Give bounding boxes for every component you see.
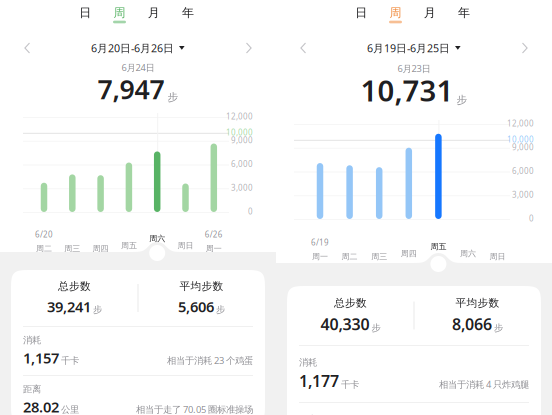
staticText: 0 [248, 206, 253, 217]
staticText: 6,000 [231, 159, 253, 169]
staticText: 总步数 [334, 296, 367, 309]
button[interactable]: 日 [344, 4, 378, 26]
button[interactable]: 月 [137, 4, 171, 26]
staticText: 6/26 [205, 229, 223, 240]
staticText: 6/19 [311, 237, 329, 248]
staticText: 5,606 [178, 297, 214, 316]
staticText: 日 [79, 5, 91, 20]
staticText: 公里 [61, 404, 79, 415]
staticText: 10,000 [226, 127, 253, 138]
staticText: 12,000 [507, 118, 534, 129]
staticText: 步 [93, 304, 102, 315]
staticText: 周日 [490, 252, 506, 261]
staticText: 周二 [36, 244, 52, 253]
button[interactable]: Previous period [14, 37, 40, 59]
button[interactable]: 6月20日-6月26日 [78, 37, 198, 59]
staticText: 周四 [401, 249, 417, 258]
staticText: 6月24日 [121, 61, 154, 74]
staticText: 距离 [23, 383, 41, 395]
staticText: 39,241 [47, 297, 91, 316]
staticText: 6,000 [512, 166, 534, 176]
staticText: 7,947 [97, 71, 164, 107]
button[interactable]: 6月19日-6月25日 [354, 37, 474, 59]
staticText: 28.02 [23, 397, 59, 415]
staticText: 0 [529, 213, 534, 224]
staticText: 6/20 [35, 229, 53, 240]
staticText: 周日 [177, 241, 193, 250]
staticText: 相当于走了 70.05 圈标准操场 [136, 403, 253, 415]
staticText: 周 [113, 5, 125, 20]
staticText: 平均步数 [179, 280, 223, 293]
staticText: 9,000 [512, 142, 534, 152]
staticText: 月 [148, 5, 160, 20]
staticText: 年 [458, 5, 470, 20]
staticText: 3,000 [231, 182, 253, 193]
button[interactable]: 月 [413, 4, 447, 26]
button[interactable]: 周 [378, 4, 412, 26]
staticText: 9,000 [231, 135, 253, 145]
staticText: 相当于消耗 4 只炸鸡腿 [439, 378, 529, 390]
staticText: 周二 [342, 252, 358, 261]
staticText: 步 [494, 322, 503, 334]
button[interactable]: 周 [102, 4, 136, 26]
staticText: 10,731 [360, 70, 453, 109]
staticText: 日 [355, 5, 367, 20]
staticText: 步 [371, 322, 380, 334]
staticText: 消耗 [299, 357, 317, 368]
staticText: 10,000 [507, 134, 534, 145]
staticText: 千卡 [341, 379, 359, 390]
staticText: 1,177 [299, 370, 339, 391]
button[interactable]: Previous period [290, 37, 316, 59]
staticText: 消耗 [23, 334, 41, 346]
staticText: 周六 [460, 249, 476, 258]
staticText: 12,000 [226, 111, 253, 122]
button[interactable]: 日 [68, 4, 102, 26]
staticText: 1,157 [23, 348, 59, 367]
staticText: 6月20日-6月26日 [91, 41, 174, 55]
staticText: 周一 [312, 252, 328, 261]
staticText: 6月23日 [397, 62, 430, 75]
staticText: 周六 [149, 234, 165, 243]
staticText: 周 [389, 5, 401, 20]
staticText: 周三 [64, 244, 80, 253]
staticText: 月 [424, 5, 436, 20]
staticText: 千卡 [61, 355, 79, 366]
staticText: 6月19日-6月25日 [367, 41, 450, 55]
staticText: 周四 [93, 244, 109, 253]
button[interactable]: Next period [236, 37, 262, 59]
staticText: 总步数 [58, 280, 91, 293]
staticText: 周五 [121, 241, 137, 250]
staticText: 周一 [206, 244, 222, 253]
button[interactable]: 年 [171, 4, 205, 26]
staticText: 3,000 [512, 189, 534, 200]
staticText: 8,066 [452, 313, 492, 335]
staticText: 平均步数 [455, 296, 499, 309]
staticText: 周三 [371, 252, 387, 261]
staticText: 周五 [430, 242, 446, 251]
staticText: 距离 [299, 414, 317, 415]
button[interactable]: Next period [512, 37, 538, 59]
staticText: 步 [456, 93, 467, 106]
staticText: 年 [182, 5, 194, 20]
staticText: 40,330 [320, 313, 369, 335]
button[interactable]: 年 [447, 4, 481, 26]
staticText: 相当于消耗 23 个鸡蛋 [167, 354, 253, 366]
staticText: 步 [167, 91, 178, 104]
staticText: 步 [216, 304, 225, 315]
